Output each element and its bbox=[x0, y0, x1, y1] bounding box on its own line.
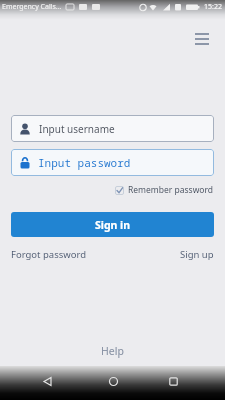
staticText: Input password bbox=[38, 155, 131, 170]
button[interactable]: Sign in bbox=[11, 212, 214, 237]
button[interactable]: Input username bbox=[11, 115, 214, 142]
staticText: Emergency Calls... bbox=[2, 2, 62, 12]
button[interactable]: Help bbox=[101, 344, 124, 358]
staticText: Sign in bbox=[95, 218, 131, 232]
button[interactable] bbox=[95, 367, 131, 395]
button[interactable]: Forgot password bbox=[11, 248, 87, 261]
button[interactable] bbox=[29, 367, 65, 395]
button[interactable] bbox=[155, 367, 191, 395]
staticText: Remember password bbox=[128, 184, 214, 196]
staticText: Forgot password bbox=[11, 248, 87, 261]
button[interactable]: Sign up bbox=[180, 248, 214, 261]
button[interactable] bbox=[192, 30, 212, 48]
staticText: Input username bbox=[39, 122, 115, 136]
button[interactable]: Input password bbox=[11, 149, 214, 176]
staticText: 15:22 bbox=[204, 2, 222, 12]
staticText: Help bbox=[101, 344, 124, 358]
button[interactable]: Remember password bbox=[115, 184, 214, 196]
staticText: Sign up bbox=[180, 248, 214, 261]
